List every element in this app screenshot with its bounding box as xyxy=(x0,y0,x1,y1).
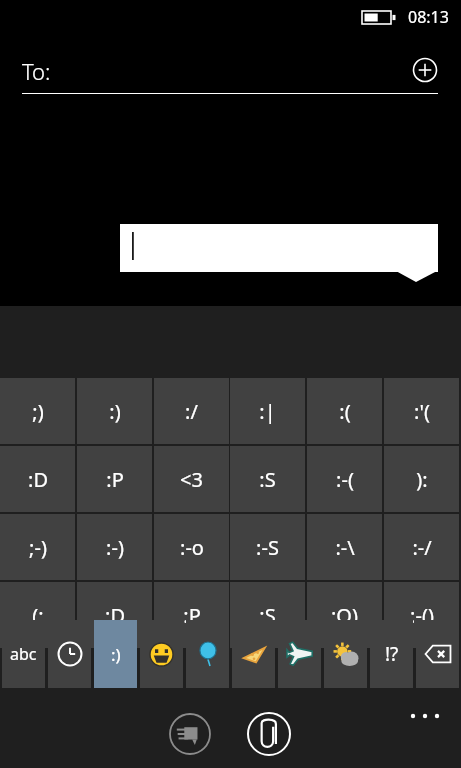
staticText: :-) xyxy=(106,534,124,561)
staticText: :) xyxy=(111,643,121,666)
button[interactable]: :-) xyxy=(77,514,152,580)
staticText: :-() xyxy=(410,602,434,629)
button[interactable]: :'( xyxy=(384,378,459,444)
staticText: ): xyxy=(416,466,428,493)
staticText: :) xyxy=(109,398,121,425)
staticText: :S xyxy=(259,602,276,629)
staticText: :P xyxy=(183,602,201,629)
staticText: :| xyxy=(259,398,276,425)
staticText: :S xyxy=(259,466,276,493)
staticText: :/ xyxy=(185,398,198,425)
button[interactable]: Send xyxy=(168,712,212,756)
button[interactable]: :S xyxy=(230,582,305,648)
button[interactable]: :( xyxy=(307,378,382,444)
staticText: ;) xyxy=(32,398,44,425)
button[interactable]: :O) xyxy=(307,582,382,648)
staticText: :( xyxy=(339,398,351,425)
staticText: :D xyxy=(105,602,125,629)
button[interactable]: ;) xyxy=(0,378,75,444)
staticText: :-o xyxy=(180,534,204,561)
button[interactable]: :P xyxy=(154,582,229,648)
button[interactable]: :-() xyxy=(384,582,459,648)
staticText: :-S xyxy=(256,534,279,561)
button[interactable]: :S xyxy=(230,446,305,512)
button[interactable]: To: xyxy=(0,46,461,98)
staticText: :-/ xyxy=(412,534,432,561)
staticText: :D xyxy=(28,466,48,493)
button[interactable]: celebration xyxy=(186,620,229,688)
button[interactable]: :D xyxy=(77,582,152,648)
staticText: :O) xyxy=(331,602,358,629)
button[interactable]: :| xyxy=(230,378,305,444)
button[interactable]: <3 xyxy=(154,446,229,512)
button[interactable]: recent xyxy=(48,620,91,688)
staticText: (: xyxy=(32,602,44,629)
button[interactable]: :P xyxy=(77,446,152,512)
staticText: abc xyxy=(10,643,37,665)
button[interactable]: ;-) xyxy=(0,514,75,580)
button[interactable]: smileys xyxy=(94,620,137,688)
staticText: 08:13 xyxy=(408,6,449,28)
button[interactable]: (: xyxy=(0,582,75,648)
staticText: !? xyxy=(385,641,399,667)
button[interactable] xyxy=(120,224,438,282)
staticText: :-\ xyxy=(335,534,355,561)
staticText: :P xyxy=(106,466,124,493)
button[interactable]: :D xyxy=(0,446,75,512)
button[interactable]: More options xyxy=(404,704,450,728)
button[interactable]: food xyxy=(232,620,275,688)
button[interactable]: :-\ xyxy=(307,514,382,580)
staticText: <3 xyxy=(180,466,203,493)
staticText: :'( xyxy=(414,398,430,425)
button[interactable]: abc xyxy=(2,620,45,688)
button[interactable]: faces xyxy=(140,620,183,688)
button[interactable]: :-/ xyxy=(384,514,459,580)
staticText: ;-) xyxy=(29,534,47,561)
button[interactable]: :) xyxy=(77,378,152,444)
button[interactable]: backspace xyxy=(416,620,459,688)
button[interactable]: :-( xyxy=(307,446,382,512)
button[interactable]: weather xyxy=(324,620,367,688)
button[interactable]: ): xyxy=(384,446,459,512)
button[interactable]: travel xyxy=(278,620,321,688)
button[interactable]: punctuation xyxy=(370,620,413,688)
staticText: To: xyxy=(22,56,51,86)
button[interactable]: Add recipient xyxy=(410,55,440,85)
button[interactable]: :-S xyxy=(230,514,305,580)
button[interactable]: Attach xyxy=(246,711,292,757)
staticText: :-( xyxy=(336,466,354,493)
button[interactable]: :/ xyxy=(154,378,229,444)
button[interactable]: :-o xyxy=(154,514,229,580)
